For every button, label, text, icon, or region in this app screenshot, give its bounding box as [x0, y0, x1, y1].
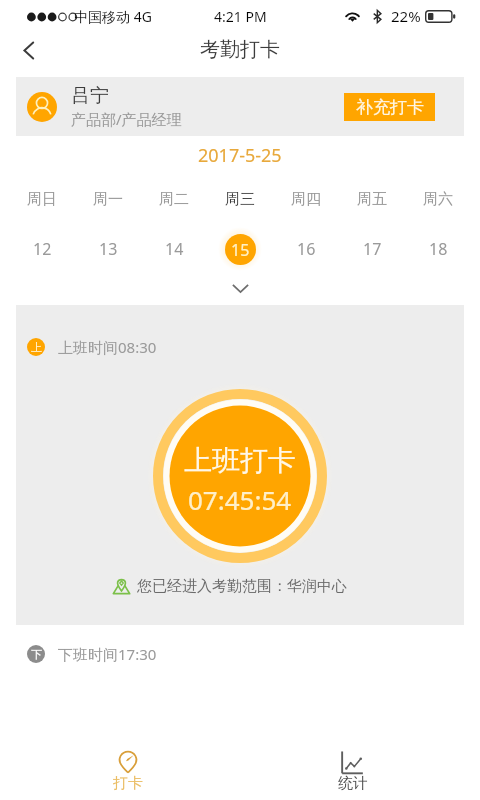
button[interactable]: 13 — [75, 233, 141, 265]
staticText: 产品部/产品经理 — [71, 109, 182, 129]
staticText: 13 — [99, 238, 118, 260]
button[interactable]: 12 — [9, 233, 75, 265]
staticText: 14 — [165, 238, 184, 260]
button[interactable]: 打卡 — [15, 742, 240, 798]
staticText: 17 — [363, 238, 382, 260]
staticText: 15 — [231, 239, 250, 261]
staticText: 您已经进入考勤范围：华润中心 — [137, 577, 347, 596]
staticText: 统计 — [338, 774, 368, 793]
button[interactable]: 15 — [207, 233, 273, 265]
staticText: 上班时间08:30 — [58, 337, 157, 357]
button[interactable]: 上班打卡 — [153, 389, 327, 563]
staticText: 中国移动 4G — [74, 7, 152, 26]
staticText: 周一 — [93, 190, 123, 209]
staticText: 12 — [33, 238, 52, 260]
button[interactable]: 18 — [405, 233, 471, 265]
staticText: 2017-5-25 — [198, 143, 282, 168]
staticText: 07:45:54 — [188, 482, 292, 517]
staticText: 周六 — [423, 190, 453, 209]
button[interactable]: 统计 — [240, 742, 465, 798]
staticText: 补充打卡 — [356, 97, 424, 118]
staticText: 上 — [31, 340, 42, 354]
staticText: 18 — [429, 238, 448, 260]
staticText: 22% — [391, 6, 421, 26]
staticText: 周二 — [159, 190, 189, 209]
button[interactable]: Back — [12, 33, 46, 67]
staticText: 下班时间17:30 — [58, 644, 157, 664]
staticText: 周五 — [357, 190, 387, 209]
button[interactable]: Expand calendar — [0, 276, 480, 300]
button[interactable]: 16 — [273, 233, 339, 265]
button[interactable]: 14 — [141, 233, 207, 265]
staticText: 下 — [31, 647, 42, 661]
button[interactable]: 17 — [339, 233, 405, 265]
staticText: 打卡 — [113, 774, 143, 793]
staticText: 吕宁 — [71, 84, 109, 108]
staticText: 周三 — [225, 190, 255, 209]
staticText: 周日 — [27, 190, 57, 209]
staticText: 16 — [297, 238, 316, 260]
button[interactable]: 吕宁 — [16, 77, 464, 136]
button[interactable]: 补充打卡 — [344, 93, 435, 121]
staticText: 上班打卡 — [184, 443, 296, 478]
staticText: 考勤打卡 — [200, 37, 280, 62]
staticText: 周四 — [291, 190, 321, 209]
staticText: 4:21 PM — [214, 7, 267, 26]
